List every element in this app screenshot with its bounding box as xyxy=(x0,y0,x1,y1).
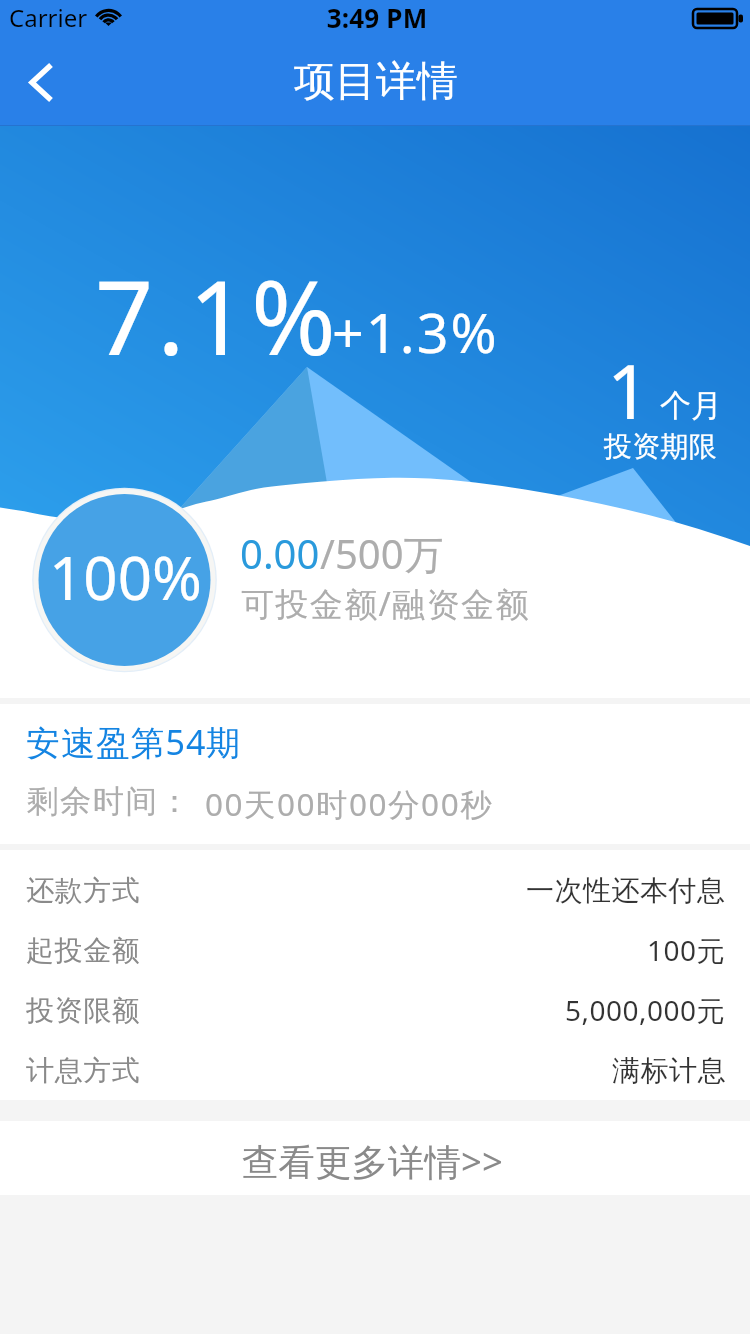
staticText: 剩余时间： xyxy=(26,782,191,822)
staticText: 投资期限 xyxy=(604,429,717,464)
staticText: 5,000,000元 xyxy=(565,991,726,1029)
staticText: 起投金额 xyxy=(26,933,140,968)
staticText: 1 xyxy=(607,339,650,441)
staticText: 投资限额 xyxy=(26,993,140,1028)
button[interactable]: Back xyxy=(0,44,86,126)
staticText: 安速盈第54期 xyxy=(26,719,242,765)
button[interactable]: 计息方式 xyxy=(0,1040,750,1100)
staticText: 查看更多详情>> xyxy=(242,1136,503,1186)
staticText: 还款方式 xyxy=(26,873,140,908)
button[interactable]: 投资限额 xyxy=(0,980,750,1040)
staticText: Carrier xyxy=(9,1,88,34)
staticText: 7.1% xyxy=(95,246,340,385)
button[interactable]: 查看更多详情>> xyxy=(0,1121,750,1195)
staticText: 0.00 xyxy=(240,526,320,580)
staticText: 满标计息 xyxy=(612,1053,726,1088)
staticText: 3:49 PM xyxy=(2,0,750,35)
staticText: 100元 xyxy=(647,931,726,969)
staticText: 一次性还本付息 xyxy=(526,873,726,908)
staticText: 项目详情 xyxy=(1,56,750,108)
staticText: 个月 xyxy=(660,386,722,425)
staticText: 00天00时00分00秒 xyxy=(205,782,494,825)
staticText: +1.3% xyxy=(332,294,499,370)
staticText: /500万 xyxy=(320,526,444,581)
staticText: 计息方式 xyxy=(26,1053,140,1088)
staticText: 100% xyxy=(49,536,202,618)
button[interactable]: 起投金额 xyxy=(0,920,750,980)
staticText: 可投金额/融资金额 xyxy=(241,581,530,626)
button[interactable]: 还款方式 xyxy=(0,860,750,920)
